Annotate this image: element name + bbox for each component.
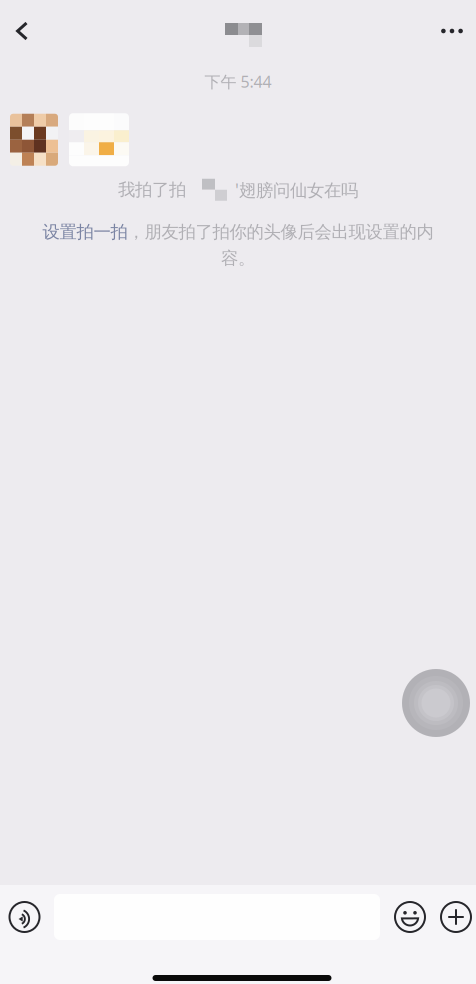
staticText: 设置拍一拍	[42, 221, 127, 243]
staticText: 下午 5:44	[204, 71, 271, 92]
button[interactable]: More options	[438, 889, 474, 945]
staticText: ，朋友拍了拍你的头像后会出现设置的内	[127, 221, 433, 243]
button[interactable]: Emoji	[392, 889, 428, 945]
button[interactable]: Back	[0, 0, 44, 62]
staticText: 容。	[221, 248, 255, 269]
button[interactable]: More	[427, 0, 476, 62]
button[interactable]: Voice message	[0, 889, 49, 945]
staticText: '翅膀问仙女在吗	[235, 178, 358, 201]
staticText: 我拍了拍	[118, 179, 186, 200]
